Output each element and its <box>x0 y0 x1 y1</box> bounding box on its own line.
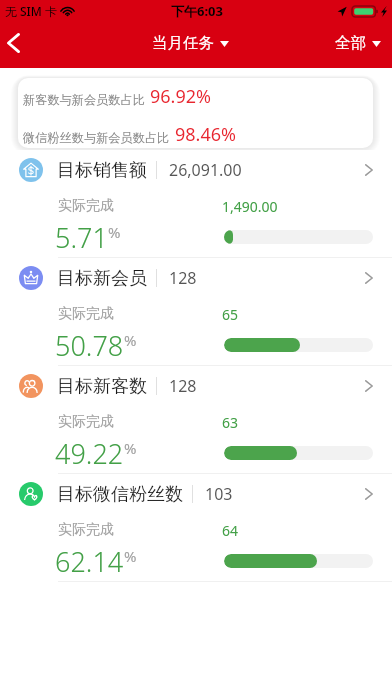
staticText: 128 <box>169 267 197 289</box>
button[interactable]: 当月任务 <box>142 27 239 59</box>
staticText: 26,091.00 <box>169 159 242 181</box>
button[interactable]: 目标微信粉丝数 <box>0 473 392 581</box>
staticText: 50.78 <box>55 327 124 364</box>
button[interactable]: 目标新客数 <box>0 365 392 473</box>
staticText: 64 <box>222 521 239 540</box>
staticText: 62.14 <box>55 543 124 580</box>
staticText: 实际完成 <box>58 197 114 215</box>
staticText: 96.92% <box>150 84 211 109</box>
staticText: 实际完成 <box>58 521 114 539</box>
staticText: 下午6:03 <box>171 2 223 20</box>
staticText: 微信粉丝数与新会员数占比 <box>23 130 170 145</box>
staticText: 目标新会员 <box>57 267 147 290</box>
staticText: 63 <box>222 413 239 432</box>
staticText: 1,490.00 <box>222 197 278 216</box>
staticText: 实际完成 <box>58 413 114 431</box>
staticText: 实际完成 <box>58 305 114 323</box>
staticText: 当月任务 <box>152 33 214 53</box>
staticText: % <box>124 438 137 458</box>
staticText: 目标新客数 <box>57 375 147 398</box>
staticText: % <box>108 222 121 242</box>
staticText: % <box>124 330 137 350</box>
staticText: 目标销售额 <box>57 159 147 182</box>
staticText: % <box>124 546 137 566</box>
staticText: 全部 <box>335 33 366 53</box>
staticText: 新客数与新会员数占比 <box>23 92 145 107</box>
staticText: 103 <box>205 483 233 505</box>
button[interactable]: Back <box>0 26 28 68</box>
button[interactable]: 目标新会员 <box>0 257 392 365</box>
staticText: 65 <box>222 305 239 324</box>
staticText: 目标微信粉丝数 <box>57 483 183 506</box>
staticText: 98.46% <box>175 122 236 147</box>
button[interactable]: 全部 <box>323 27 392 59</box>
staticText: 49.22 <box>55 435 124 472</box>
staticText: 卡 <box>45 4 57 19</box>
staticText: 128 <box>169 375 197 397</box>
staticText: SIM <box>20 3 42 19</box>
staticText: 5.71 <box>55 219 108 256</box>
button[interactable]: 目标销售额 <box>0 150 392 257</box>
staticText: 无 <box>5 4 17 19</box>
